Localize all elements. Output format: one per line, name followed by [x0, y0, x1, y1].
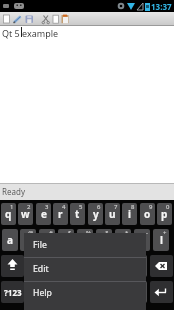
- button[interactable]: e: [36, 203, 51, 225]
- staticText: z: [32, 259, 37, 273]
- staticText: File: [33, 239, 47, 251]
- staticText: t: [75, 207, 80, 221]
- button[interactable]: [1, 255, 24, 277]
- staticText: l: [160, 233, 163, 247]
- staticText: q: [5, 207, 12, 221]
- button[interactable]: h: [96, 229, 112, 251]
- staticText: a: [7, 233, 13, 247]
- button[interactable]: q: [1, 203, 16, 225]
- staticText: d: [44, 233, 51, 247]
- staticText: 3: [45, 203, 49, 211]
- button[interactable]: i: [122, 203, 137, 225]
- button[interactable]: l: [153, 229, 169, 251]
- staticText: *: [125, 229, 129, 237]
- button[interactable]: d: [39, 229, 55, 251]
- button[interactable]: x: [44, 255, 59, 277]
- button[interactable]: o: [140, 203, 155, 225]
- staticText: o: [144, 207, 151, 221]
- staticText: @: [28, 229, 34, 237]
- button[interactable]: p: [157, 203, 172, 225]
- staticText: 6: [97, 203, 101, 211]
- staticText: -: [146, 229, 148, 237]
- staticText: 9: [149, 203, 153, 211]
- button[interactable]: b: [97, 255, 112, 277]
- button[interactable]: g: [77, 229, 93, 251]
- staticText: Ready: [2, 186, 25, 197]
- button[interactable]: [24, 13, 34, 25]
- button[interactable]: z: [27, 255, 42, 277]
- button[interactable]: ,: [27, 281, 42, 303]
- staticText: 4: [62, 203, 66, 211]
- button[interactable]: j: [115, 229, 131, 251]
- staticText: +: [163, 229, 167, 237]
- button[interactable]: [150, 255, 173, 277]
- button[interactable]: [150, 281, 173, 303]
- button[interactable]: v: [79, 255, 94, 277]
- staticText: $: [68, 229, 72, 237]
- staticText: 0: [166, 203, 170, 211]
- button[interactable]: w: [18, 203, 33, 225]
- button[interactable]: a: [2, 229, 18, 251]
- button[interactable]: r: [53, 203, 68, 225]
- staticText: 5: [79, 203, 83, 211]
- button[interactable]: y: [88, 203, 103, 225]
- staticText: y: [93, 207, 99, 221]
- button[interactable]: Edit: [24, 257, 146, 281]
- button[interactable]: Help: [24, 281, 146, 305]
- staticText: w: [21, 207, 30, 221]
- staticText: ,: [33, 285, 36, 299]
- staticText: 2: [27, 203, 31, 211]
- staticText: ?123: [4, 287, 22, 298]
- button[interactable]: [52, 13, 62, 25]
- button[interactable]: [2, 13, 12, 25]
- staticText: 13:37: [151, 1, 172, 12]
- button[interactable]: Qt 5 example: [2, 27, 59, 39]
- button[interactable]: k: [134, 229, 150, 251]
- staticText: 1: [10, 203, 14, 211]
- button[interactable]: [61, 13, 71, 25]
- staticText: Help: [33, 287, 52, 299]
- button[interactable]: .: [132, 281, 147, 303]
- button[interactable]: u: [105, 203, 120, 225]
- button[interactable]: [44, 281, 130, 303]
- button[interactable]: s: [20, 229, 36, 251]
- button[interactable]: c: [62, 255, 77, 277]
- button[interactable]: [13, 13, 23, 25]
- staticText: e: [41, 207, 47, 221]
- button[interactable]: [42, 13, 52, 25]
- button[interactable]: ?123: [1, 281, 24, 303]
- staticText: %: [86, 229, 91, 237]
- staticText: u: [109, 207, 116, 221]
- staticText: i: [128, 207, 131, 221]
- staticText: r: [58, 207, 63, 221]
- button[interactable]: f: [58, 229, 74, 251]
- staticText: 7: [114, 203, 118, 211]
- button[interactable]: File: [24, 233, 146, 257]
- button[interactable]: t: [70, 203, 85, 225]
- staticText: 8: [131, 203, 135, 211]
- staticText: &: [105, 229, 110, 237]
- staticText: #: [49, 229, 53, 237]
- staticText: p: [161, 207, 168, 221]
- staticText: Edit: [33, 263, 49, 275]
- button[interactable]: m: [132, 255, 147, 277]
- button[interactable]: n: [115, 255, 130, 277]
